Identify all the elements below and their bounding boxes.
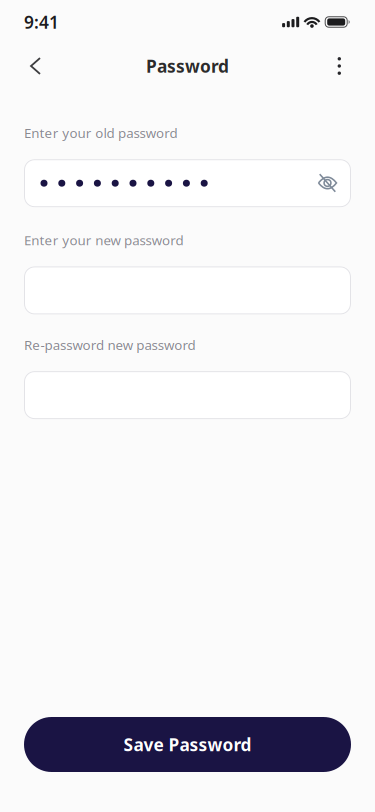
staticText: Enter your new password	[24, 231, 183, 249]
button[interactable]: More options	[326, 44, 375, 88]
staticText: Enter your old password	[24, 124, 177, 142]
staticText: Re-password new password	[24, 336, 196, 354]
button[interactable]: Show password	[317, 173, 337, 193]
staticText: Save Password	[123, 733, 251, 756]
staticText: 9:41	[24, 10, 59, 33]
button[interactable]: Back	[0, 44, 53, 88]
staticText: Password	[146, 54, 229, 77]
button[interactable]: Save Password	[24, 717, 351, 772]
